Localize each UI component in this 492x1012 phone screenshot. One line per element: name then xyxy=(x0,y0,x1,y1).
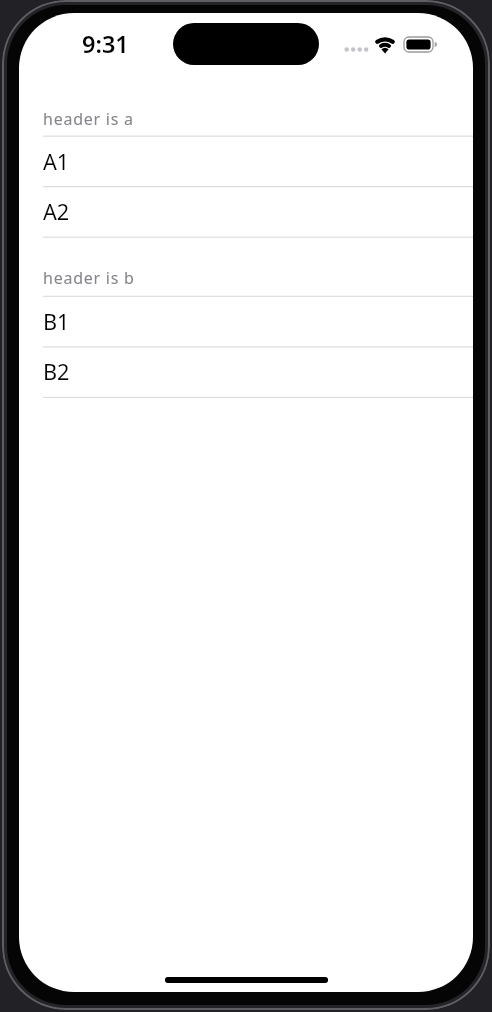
staticText: B2 xyxy=(43,357,70,387)
button[interactable]: header is b xyxy=(19,267,473,295)
staticText: 9:31 xyxy=(82,28,129,60)
button[interactable]: B1 xyxy=(19,296,473,346)
staticText: A1 xyxy=(43,147,70,177)
staticText: B1 xyxy=(43,307,70,337)
staticText: header is b xyxy=(43,267,135,289)
button[interactable]: A2 xyxy=(19,186,473,236)
button[interactable]: header is a xyxy=(19,108,473,136)
button[interactable]: A1 xyxy=(19,136,473,186)
staticText: A2 xyxy=(43,197,70,227)
button[interactable]: B2 xyxy=(19,346,473,396)
staticText: header is a xyxy=(43,108,134,130)
